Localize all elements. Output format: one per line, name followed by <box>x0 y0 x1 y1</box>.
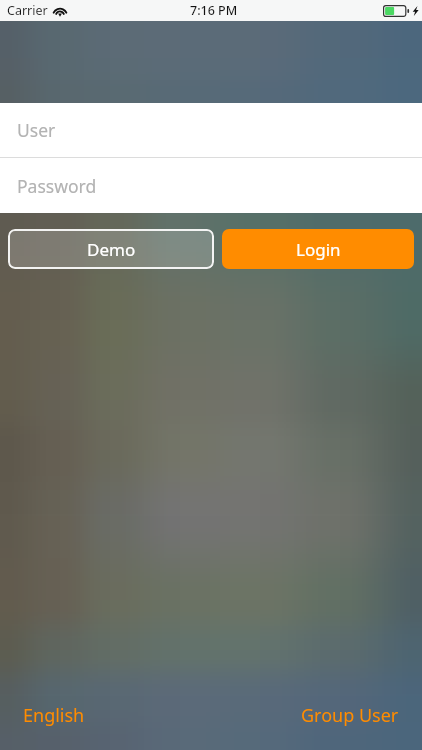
button[interactable]: Demo <box>8 229 214 269</box>
button[interactable]: English <box>23 697 85 734</box>
button[interactable]: Login <box>222 229 414 269</box>
staticText: Login <box>296 238 341 261</box>
button[interactable]: Password <box>0 158 422 213</box>
staticText: Demo <box>87 238 136 261</box>
staticText: Group User <box>301 703 399 728</box>
button[interactable]: User <box>0 103 422 157</box>
staticText: 7:16 PM <box>190 2 238 19</box>
staticText: Carrier <box>7 2 48 19</box>
staticText: User <box>17 118 56 142</box>
button[interactable]: Group User <box>301 697 399 734</box>
staticText: Password <box>17 174 97 198</box>
staticText: English <box>23 703 85 728</box>
